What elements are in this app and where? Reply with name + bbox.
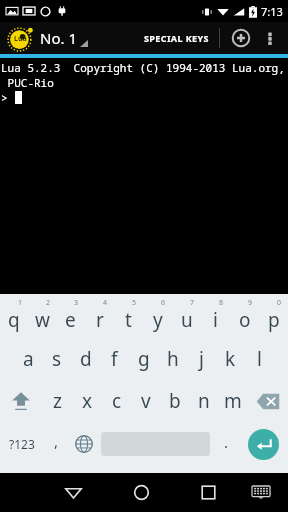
button[interactable]: n	[189, 380, 218, 422]
button[interactable]: More options	[256, 24, 284, 52]
staticText: 9	[248, 298, 253, 308]
staticText: t	[125, 307, 132, 333]
staticText: 2	[46, 298, 51, 308]
button[interactable]: No. 1	[40, 28, 88, 48]
button[interactable]: b	[160, 380, 189, 422]
button[interactable]: Lua 5.2.3 Copyright (C) 1994-2013 Lua.or…	[0, 58, 288, 294]
staticText: 3	[74, 298, 79, 308]
staticText: r	[96, 307, 104, 333]
staticText: 7:13	[261, 4, 283, 19]
staticText: n	[198, 388, 210, 414]
button[interactable]: ,	[43, 422, 69, 466]
staticText: q	[8, 307, 20, 333]
button[interactable]: k	[216, 338, 245, 380]
button[interactable]: 7	[172, 294, 201, 338]
staticText: b	[169, 388, 181, 414]
button[interactable]: Home	[120, 473, 162, 512]
button[interactable]: 4	[85, 294, 114, 338]
button[interactable]: v	[131, 380, 160, 422]
staticText: z	[53, 388, 62, 414]
staticText: Lua	[14, 34, 27, 44]
staticText: f	[111, 346, 118, 372]
button[interactable]: 8	[201, 294, 230, 338]
button[interactable]: Backspace	[247, 380, 288, 422]
staticText: PUC-Rio	[1, 75, 54, 90]
staticText: .	[224, 432, 229, 452]
button[interactable]: Back	[52, 473, 95, 512]
button[interactable]: Hide keyboard	[240, 473, 282, 512]
button[interactable]: 5	[114, 294, 143, 338]
staticText: 7	[190, 298, 195, 308]
staticText: c	[112, 388, 122, 414]
button[interactable]: h	[158, 338, 187, 380]
staticText: 6	[161, 298, 166, 308]
staticText: j	[199, 346, 204, 372]
button[interactable]: .	[213, 422, 239, 466]
button[interactable]: ?123	[0, 422, 43, 466]
staticText: p	[268, 307, 280, 333]
staticText: g	[138, 346, 150, 372]
button[interactable]: g	[129, 338, 158, 380]
button[interactable]: SPECIAL KEYS	[140, 32, 213, 44]
staticText: u	[181, 307, 193, 333]
staticText: ?123	[9, 436, 35, 452]
button[interactable]: c	[102, 380, 131, 422]
staticText: l	[257, 346, 262, 372]
button[interactable]: Change language	[69, 422, 98, 466]
button[interactable]: j	[187, 338, 216, 380]
button[interactable]: m	[218, 380, 247, 422]
button[interactable]: 2	[28, 294, 56, 338]
staticText: m	[224, 388, 242, 414]
button[interactable]: 3	[56, 294, 85, 338]
button[interactable]: Add	[226, 23, 256, 53]
button[interactable]: 0	[259, 294, 288, 338]
staticText: k	[225, 346, 236, 372]
staticText: >	[1, 90, 15, 105]
button[interactable]: Recent apps	[187, 473, 229, 512]
staticText: e	[65, 307, 76, 333]
staticText: 5	[132, 298, 137, 308]
staticText: d	[80, 346, 92, 372]
staticText: y	[153, 307, 163, 333]
staticText: 8	[219, 298, 224, 308]
staticText: 0	[277, 298, 282, 308]
staticText: w	[35, 307, 50, 333]
button[interactable]: a	[14, 338, 42, 380]
staticText: 1	[18, 298, 23, 308]
staticText: i	[213, 307, 218, 333]
staticText: Lua 5.2.3 Copyright (C) 1994-2013 Lua.or…	[1, 60, 285, 75]
button[interactable]: 6	[143, 294, 172, 338]
staticText: SPECIAL KEYS	[144, 32, 209, 44]
staticText: ,	[54, 431, 59, 451]
button[interactable]: 9	[230, 294, 259, 338]
button[interactable]: z	[42, 380, 72, 422]
button[interactable]: 1	[0, 294, 28, 338]
staticText: h	[167, 346, 179, 372]
staticText: v	[141, 388, 151, 414]
staticText: s	[52, 346, 62, 372]
staticText: x	[82, 388, 93, 414]
button[interactable]: l	[245, 338, 274, 380]
staticText: a	[23, 346, 34, 372]
staticText: 4	[103, 298, 108, 308]
button[interactable]: Enter	[239, 422, 288, 466]
staticText: o	[239, 307, 251, 333]
staticText: No. 1	[40, 28, 77, 48]
button[interactable]: Shift	[0, 380, 42, 422]
button[interactable]: f	[100, 338, 129, 380]
button[interactable]: s	[42, 338, 71, 380]
button[interactable]: d	[71, 338, 100, 380]
button[interactable]: x	[72, 380, 102, 422]
